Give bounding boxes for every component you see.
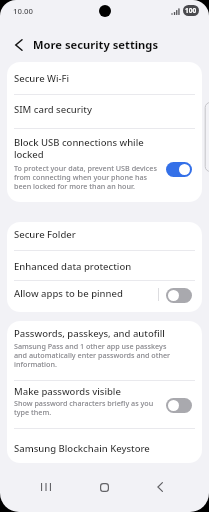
staticText: Samsung Blockchain Keystore [14,442,150,455]
staticText: To protect your data, prevent USB device… [14,163,157,192]
button[interactable] [36,477,56,497]
staticText: Allow apps to be pinned [14,287,123,300]
button[interactable] [150,477,170,497]
button[interactable] [7,381,202,428]
staticText: Make passwords visible [14,385,121,398]
staticText: Secure Folder [14,228,76,241]
staticText: Show password characters briefly as you … [14,398,154,417]
button[interactable] [6,33,30,56]
button[interactable] [166,288,192,303]
button[interactable] [7,429,202,463]
staticText: Samsung Pass and 1 other app use passkey… [14,341,171,369]
staticText: More security settings [33,37,159,52]
button[interactable] [7,222,202,250]
button[interactable] [7,281,202,312]
staticText: 10.00 [13,6,33,17]
staticText: Enhanced data protection [14,260,132,273]
button[interactable] [7,321,202,380]
staticText: 100 [185,6,197,15]
button[interactable] [7,95,202,128]
button[interactable] [166,162,192,177]
button[interactable] [166,398,192,413]
button[interactable] [94,477,114,497]
button[interactable] [7,129,202,202]
staticText: Passwords, passkeys, and autofill [14,327,165,340]
staticText: Secure Wi-Fi [14,72,70,85]
staticText: SIM card security [14,103,92,116]
button[interactable] [7,62,202,94]
staticText: Block USB connections while locked [14,136,144,160]
button[interactable] [7,251,202,280]
